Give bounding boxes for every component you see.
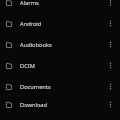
staticText: DCIM <box>20 62 35 70</box>
button[interactable] <box>109 101 112 108</box>
button[interactable] <box>109 83 112 90</box>
button[interactable]: DCIM <box>0 55 120 76</box>
button[interactable]: Download <box>0 97 120 112</box>
button[interactable] <box>109 62 112 69</box>
staticText: Audiobooks <box>20 41 52 49</box>
button[interactable]: Audiobooks <box>0 34 120 55</box>
staticText: Documents <box>20 83 51 91</box>
button[interactable]: Android <box>0 13 120 34</box>
staticText: Alarms <box>20 0 39 7</box>
button[interactable] <box>109 0 112 6</box>
staticText: Download <box>20 101 48 109</box>
button[interactable] <box>109 20 112 27</box>
button[interactable] <box>109 41 112 48</box>
button[interactable]: Documents <box>0 76 120 97</box>
staticText: Android <box>20 20 42 28</box>
button[interactable]: Alarms <box>0 0 120 13</box>
